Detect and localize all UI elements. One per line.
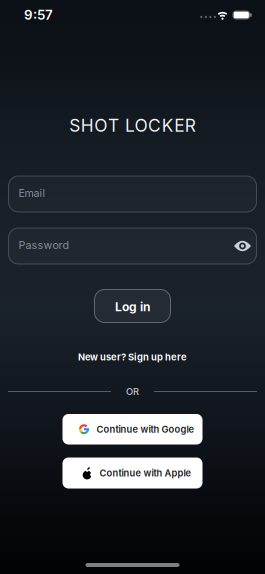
button[interactable]: New user? Sign up here	[78, 349, 187, 365]
staticText: SHOT LOCKER	[69, 115, 196, 136]
staticText: New user? Sign up here	[78, 351, 187, 362]
staticText: Continue with Google	[96, 424, 194, 435]
button[interactable]: Continue with Google	[62, 414, 202, 444]
staticText: Password	[18, 239, 69, 251]
staticText: Email	[18, 187, 45, 199]
staticText: Log in	[115, 300, 150, 314]
staticText: OR	[126, 386, 139, 397]
staticText: Continue with Apple	[99, 467, 191, 478]
button[interactable]: Continue with Apple	[62, 457, 202, 488]
button[interactable]: Show password	[234, 240, 251, 252]
button[interactable]: Log in	[94, 289, 171, 323]
staticText: 9:57	[24, 7, 53, 23]
